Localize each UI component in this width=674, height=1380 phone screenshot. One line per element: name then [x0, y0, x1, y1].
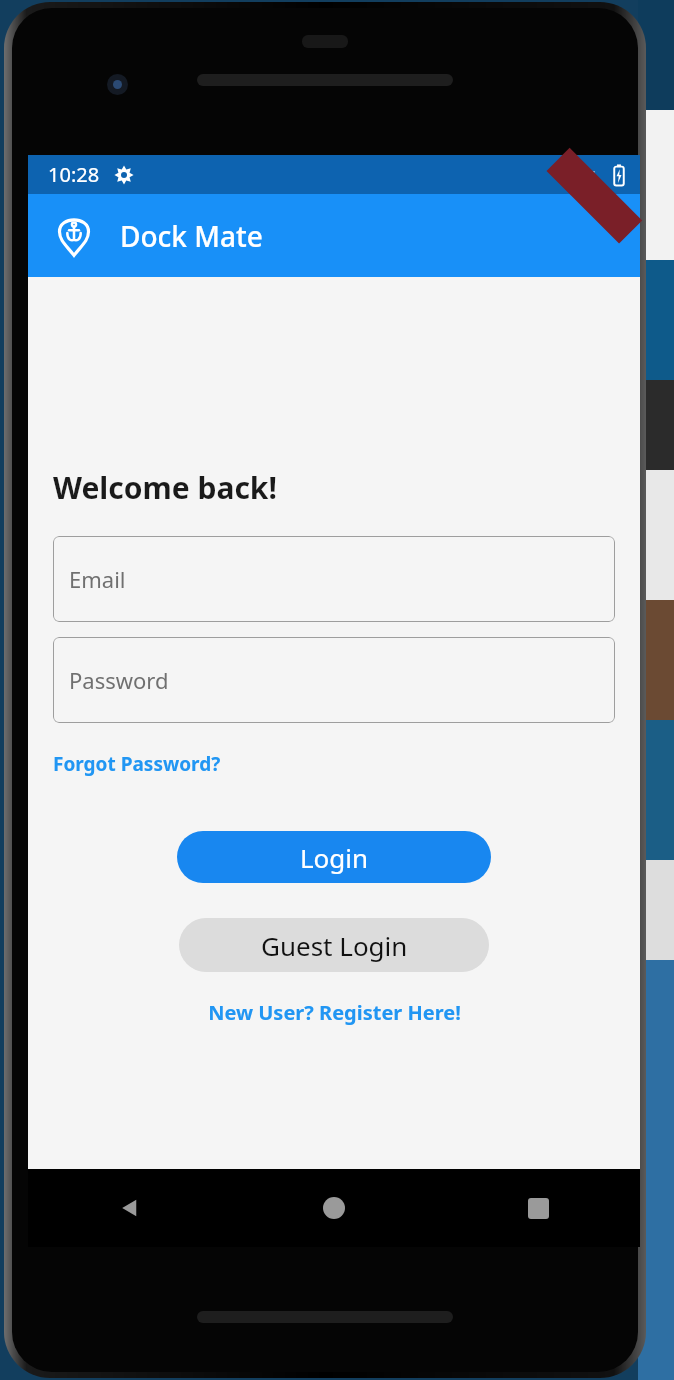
staticText: Password	[69, 665, 169, 695]
button[interactable]: Recents	[436, 1169, 640, 1247]
button[interactable]: Back	[28, 1169, 232, 1247]
button[interactable]: Password	[53, 637, 615, 723]
staticText: Forgot Password?	[53, 751, 221, 777]
staticText: Welcome back!	[53, 467, 277, 508]
button[interactable]: New User? Register Here!	[208, 997, 461, 1028]
button[interactable]: Guest Login	[179, 918, 489, 972]
staticText: Login	[300, 840, 369, 875]
staticText: 10:28	[48, 161, 100, 188]
button[interactable]: Login	[177, 831, 491, 883]
staticText: Guest Login	[261, 928, 408, 963]
staticText: Dock Mate	[120, 217, 263, 255]
button[interactable]: Home	[232, 1169, 436, 1247]
staticText: New User? Register Here!	[208, 999, 461, 1026]
button[interactable]: Forgot Password?	[53, 749, 221, 779]
button[interactable]: Dock Mate logo	[50, 212, 98, 260]
button[interactable]: Email	[53, 536, 615, 622]
staticText: Email	[69, 564, 126, 594]
